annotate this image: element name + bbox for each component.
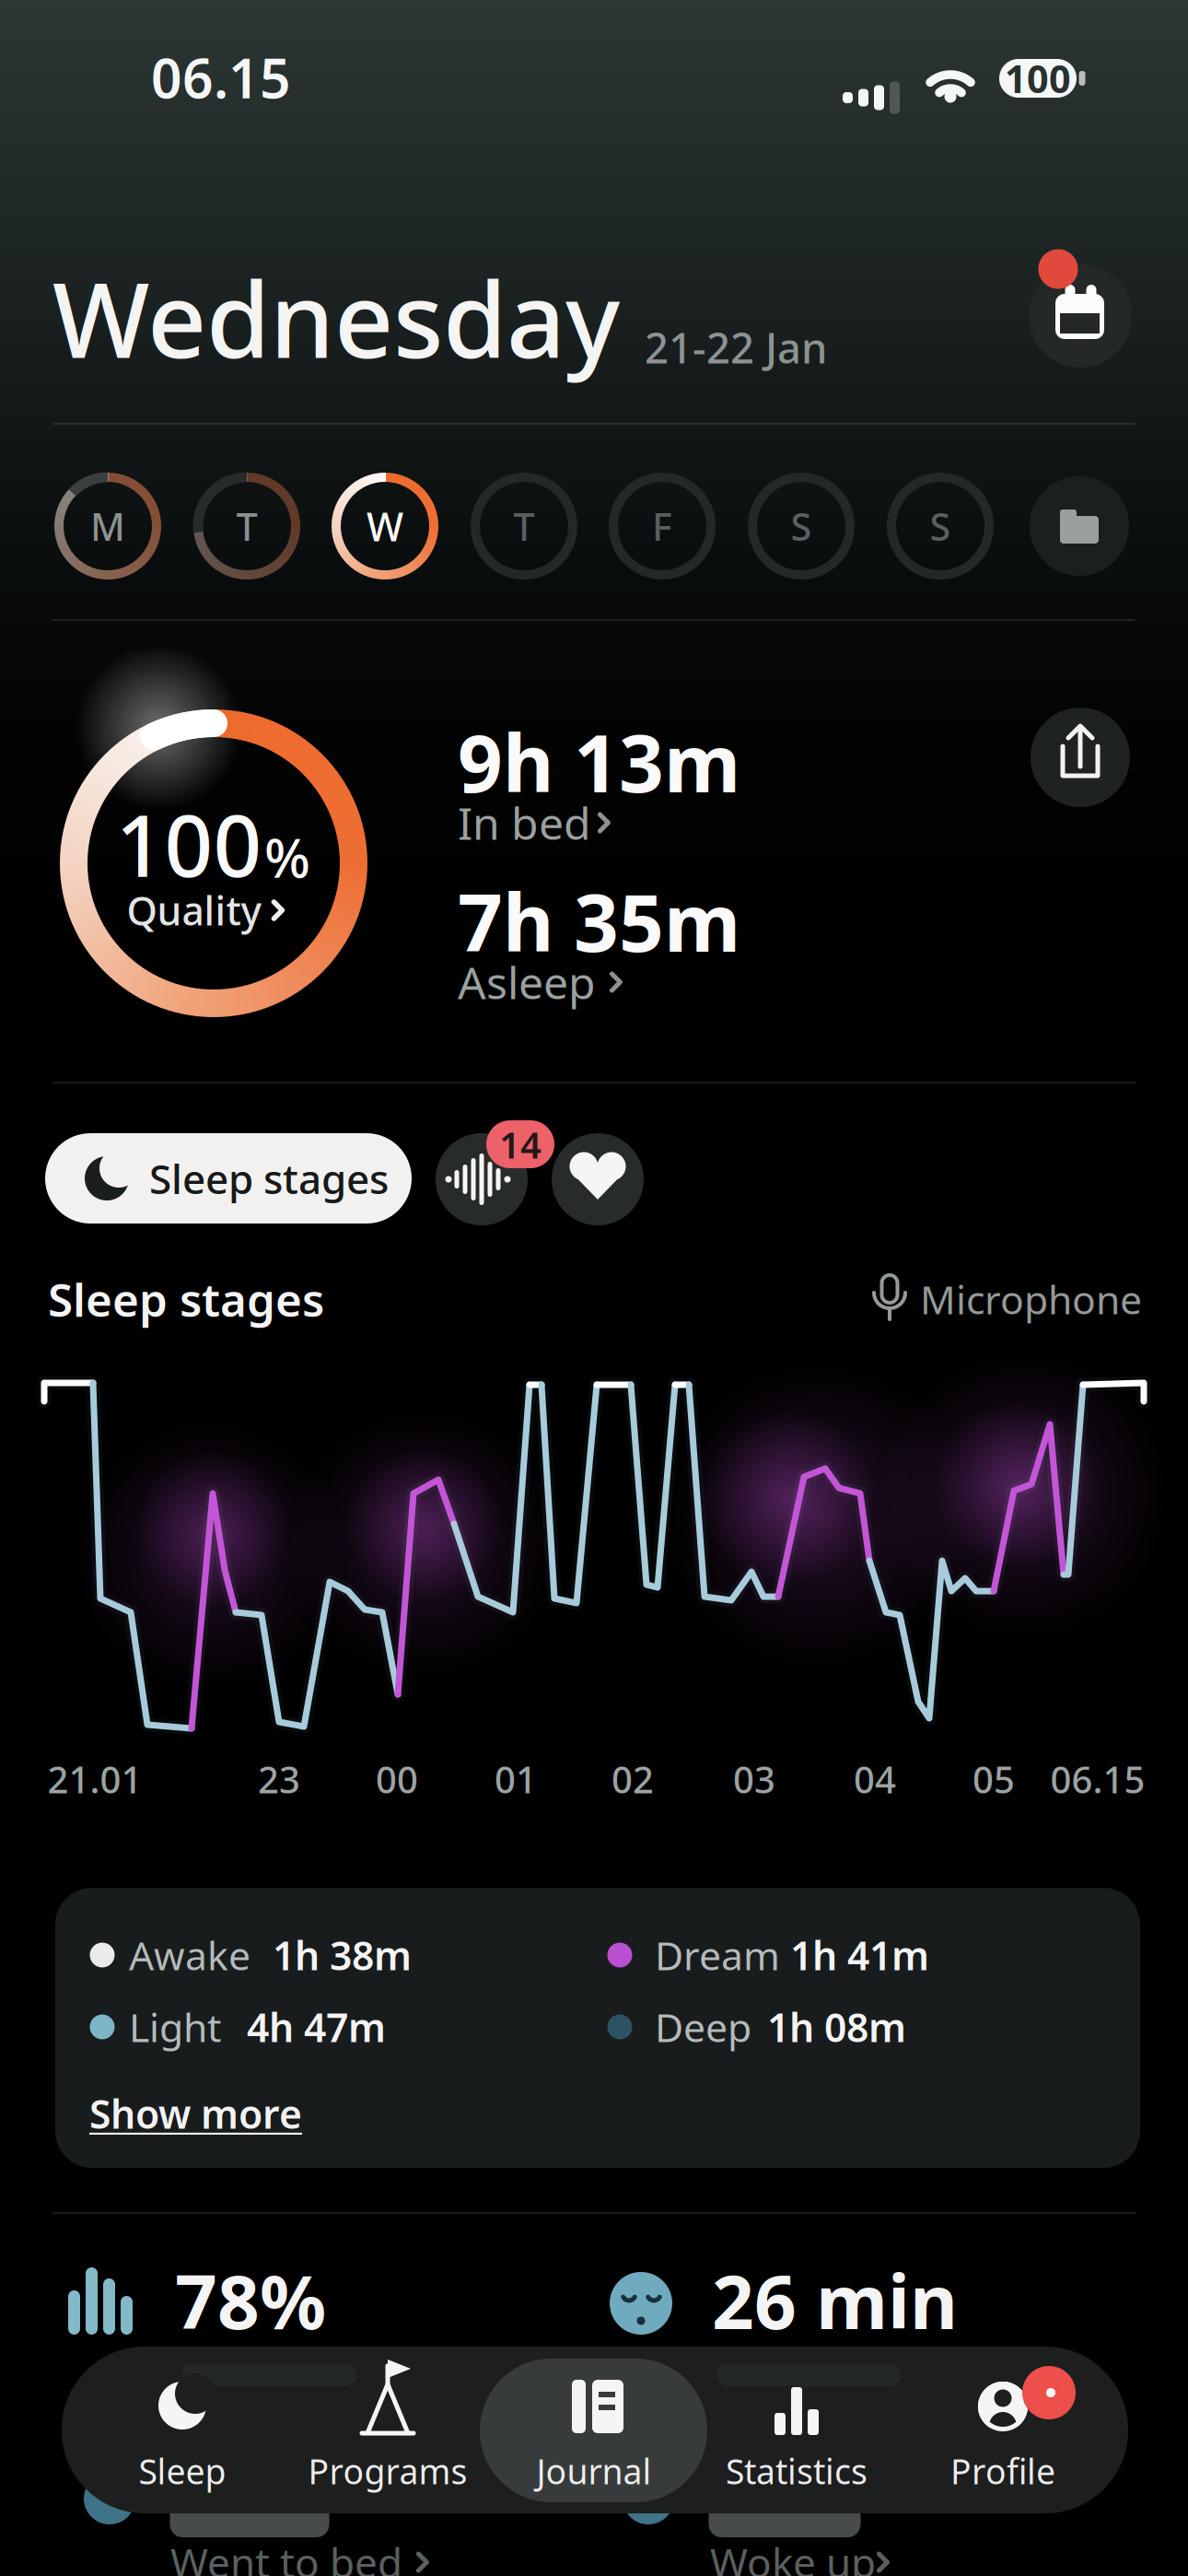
staticText: 02 <box>611 1755 654 1803</box>
staticText: Statistics <box>726 2448 868 2494</box>
staticText: 01 <box>495 1755 537 1803</box>
staticText: T <box>236 501 257 551</box>
staticText: % <box>264 821 310 893</box>
staticText: Awake <box>129 1929 250 1981</box>
staticText: Sleep <box>139 2448 226 2494</box>
staticText: 23 <box>258 1755 300 1803</box>
staticText: F <box>652 501 672 551</box>
staticText: In bed <box>458 793 591 852</box>
staticText: Went to bed <box>170 2535 402 2576</box>
staticText: T <box>513 501 535 551</box>
staticText: Microphone <box>920 1273 1142 1325</box>
staticText: W <box>367 500 403 552</box>
staticText: Show more <box>89 2087 302 2140</box>
staticText: 00 <box>376 1755 418 1803</box>
staticText: 9h 13m <box>458 710 740 814</box>
staticText: Wednesday <box>52 249 620 386</box>
staticText: Journal <box>536 2448 652 2494</box>
staticText: Sleep stages <box>48 1269 324 1329</box>
staticText: 7h 35m <box>458 869 740 973</box>
staticText: 4h 47m <box>247 2001 386 2053</box>
staticText: Asleep <box>458 953 596 1011</box>
staticText: 100 <box>116 788 262 900</box>
staticText: 04 <box>854 1755 896 1803</box>
staticText: Sleep stages <box>149 1151 389 1205</box>
staticText: Dream <box>655 1929 780 1981</box>
staticText: Woke up <box>710 2535 876 2576</box>
staticText: 06.15 <box>1050 1755 1145 1803</box>
staticText: M <box>90 501 125 551</box>
staticText: 21-22 Jan <box>645 320 827 375</box>
staticText: 100 <box>1005 53 1071 104</box>
staticText: 1h 08m <box>767 2001 906 2053</box>
staticText: 03 <box>733 1755 775 1803</box>
staticText: 1h 38m <box>273 1929 412 1981</box>
staticText: Profile <box>950 2448 1055 2494</box>
staticText: 21.01 <box>47 1755 142 1803</box>
staticText: S <box>930 501 951 551</box>
staticText: 06.15 <box>151 41 291 113</box>
staticText: 78% <box>175 2252 326 2349</box>
staticText: 26 min <box>712 2252 958 2349</box>
staticText: Programs <box>308 2448 467 2494</box>
staticText: Deep <box>655 2001 751 2053</box>
staticText: 14 <box>499 1120 542 1169</box>
staticText: Light <box>129 2001 221 2053</box>
staticText: S <box>791 501 812 551</box>
staticText: Quality <box>127 884 262 936</box>
staticText: 1h 41m <box>790 1929 929 1981</box>
staticText: 05 <box>973 1755 1015 1803</box>
